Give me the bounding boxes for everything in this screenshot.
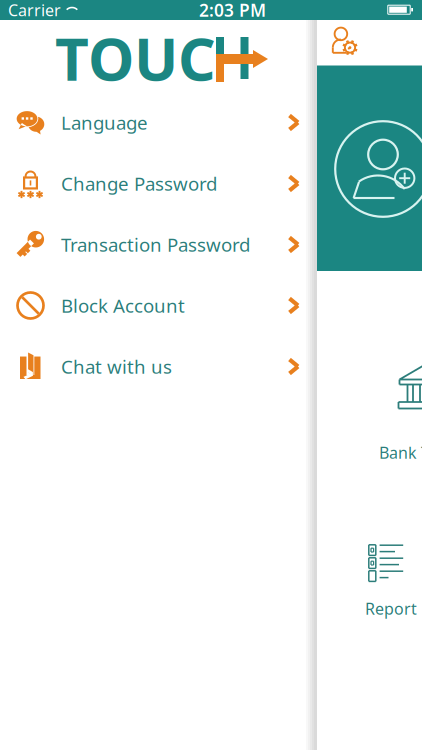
button[interactable]: Transaction Password [0, 214, 306, 275]
button[interactable]: Report [368, 544, 422, 619]
button[interactable]: Change Password [0, 153, 306, 214]
staticText: Carrier [8, 0, 61, 21]
staticText: Block Account [61, 293, 185, 318]
button[interactable]: Chat with us [0, 336, 306, 397]
staticText: TOUC [55, 19, 216, 97]
button[interactable]: Language [0, 92, 306, 153]
staticText: Transaction Password [61, 232, 250, 257]
staticText: Report [365, 598, 417, 619]
staticText: Language [61, 110, 148, 135]
button[interactable]: Bank Transfer [398, 362, 422, 463]
staticText: Bank Transfer [379, 442, 422, 463]
staticText: 2:03 PM [199, 0, 266, 21]
staticText: Change Password [61, 171, 217, 196]
button[interactable]: Block Account [0, 275, 306, 336]
staticText: Chat with us [61, 354, 172, 379]
button[interactable]: Profile settings [325, 23, 362, 60]
